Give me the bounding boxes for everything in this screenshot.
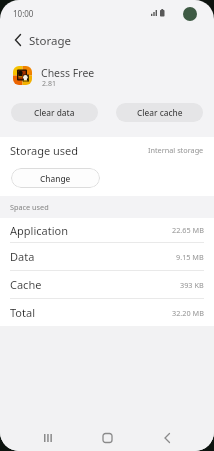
- button[interactable]: Change: [11, 168, 100, 188]
- staticText: Change: [40, 173, 71, 184]
- button[interactable]: [13, 66, 32, 85]
- staticText: Clear data: [34, 107, 75, 118]
- button[interactable]: [39, 429, 57, 447]
- staticText: 2.81: [42, 79, 56, 89]
- button[interactable]: Application: [0, 218, 214, 242]
- staticText: Cache: [10, 277, 42, 292]
- staticText: 393 KB: [180, 280, 204, 290]
- button[interactable]: Total: [0, 299, 214, 326]
- staticText: Data: [10, 249, 35, 264]
- staticText: Storage used: [10, 143, 79, 158]
- staticText: 32.20 MB: [172, 308, 204, 318]
- staticText: Chess Free: [41, 66, 95, 80]
- button[interactable]: [98, 429, 116, 447]
- staticText: 9.15 MB: [176, 252, 204, 262]
- staticText: Internal storage: [148, 145, 204, 155]
- button[interactable]: Clear data: [11, 103, 98, 122]
- staticText: Application: [10, 223, 68, 238]
- button[interactable]: Clear cache: [116, 103, 203, 122]
- staticText: Total: [10, 305, 35, 320]
- button[interactable]: Cache: [0, 271, 214, 298]
- button[interactable]: Data: [0, 243, 214, 270]
- button[interactable]: [8, 30, 28, 50]
- staticText: 10:00: [13, 8, 34, 19]
- staticText: Clear cache: [137, 107, 183, 118]
- staticText: 22.65 MB: [172, 225, 204, 235]
- staticText: Space used: [10, 202, 49, 212]
- button[interactable]: [158, 429, 176, 447]
- staticText: Storage: [29, 33, 71, 49]
